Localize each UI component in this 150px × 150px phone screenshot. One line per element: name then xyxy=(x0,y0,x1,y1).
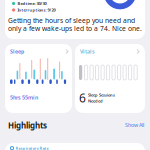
staticText: Bedtime: 30/30 xyxy=(17,1,46,6)
staticText: Highlights xyxy=(8,120,47,131)
staticText: Show All xyxy=(125,121,144,129)
button[interactable]: Respiratory Rate xyxy=(5,143,145,150)
staticText: Needed xyxy=(88,98,103,104)
button[interactable]: Show All xyxy=(112,121,144,129)
staticText: Vitals xyxy=(80,48,95,55)
staticText: only a few wake-ups led to a 74. Nice on… xyxy=(8,24,142,33)
staticText: Respiratory Rate xyxy=(16,145,49,150)
staticText: Sleep Sessions xyxy=(88,92,115,98)
staticText: 5hrs 55min xyxy=(10,94,38,101)
button[interactable]: Vitals xyxy=(75,44,145,113)
staticText: 6 xyxy=(79,90,86,106)
button[interactable]: Sleep xyxy=(5,44,72,113)
staticText: Sleep xyxy=(10,48,24,55)
staticText: Getting the hours of sleep you need and xyxy=(8,16,135,25)
staticText: Interruptions: 9/20 xyxy=(17,7,55,13)
